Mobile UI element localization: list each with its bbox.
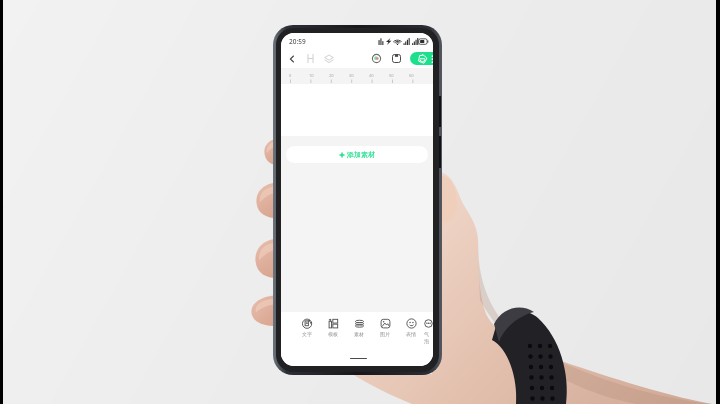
button[interactable]: 添加素材 <box>286 146 428 163</box>
staticText: 表情 <box>406 331 416 337</box>
staticText: 40 <box>369 73 374 78</box>
staticText: 50 <box>389 73 394 78</box>
button[interactable]: Back <box>284 51 299 66</box>
staticText: 0 <box>289 73 292 78</box>
staticText: 60 <box>409 73 414 78</box>
button[interactable]: Save <box>389 51 404 66</box>
button[interactable]: Export video <box>410 52 433 65</box>
button[interactable]: Layers <box>321 51 336 66</box>
button[interactable]: 图片 <box>372 318 398 337</box>
button[interactable]: 模板 <box>320 318 346 337</box>
staticText: 模板 <box>328 331 338 337</box>
button[interactable]: Color picker <box>369 51 384 66</box>
staticText: 30 <box>349 73 354 78</box>
staticText: 添加素材 <box>347 150 375 159</box>
button[interactable]: 气泡 <box>424 318 433 345</box>
staticText: 素材 <box>354 331 364 337</box>
staticText: 气泡 <box>424 331 433 345</box>
staticText: 图片 <box>380 331 390 337</box>
button[interactable]: 素材 <box>346 318 372 337</box>
button[interactable]: 表情 <box>398 318 424 337</box>
staticText: 20 <box>329 73 334 78</box>
button[interactable]: Adjust <box>303 51 318 66</box>
staticText: 文字 <box>302 331 312 337</box>
button[interactable]: 文字 <box>294 318 320 337</box>
staticText: 20:59 <box>289 37 306 46</box>
staticText: 10 <box>309 73 314 78</box>
